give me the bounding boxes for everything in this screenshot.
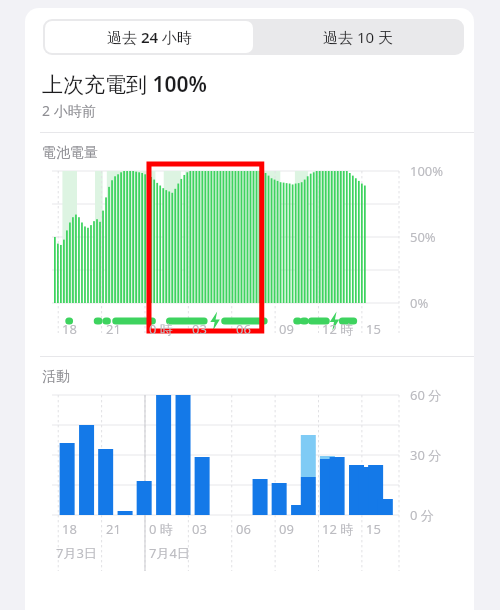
- staticText: 2 小時前: [42, 101, 96, 120]
- staticText: 0 時: [149, 520, 173, 538]
- staticText: 18: [62, 520, 77, 538]
- staticText: 09: [279, 520, 294, 538]
- staticText: 電池電量: [42, 144, 98, 162]
- staticText: 21: [106, 520, 121, 538]
- staticText: 過去 10 天: [323, 27, 393, 47]
- staticText: 09: [279, 320, 294, 338]
- staticText: 7月4日: [149, 544, 190, 562]
- staticText: 06: [236, 320, 251, 338]
- staticText: 03: [192, 320, 207, 338]
- staticText: 100%: [410, 162, 444, 180]
- staticText: 活動: [42, 368, 70, 386]
- staticText: 上次充電到 100%: [42, 70, 207, 99]
- staticText: 60 分: [410, 386, 442, 404]
- button[interactable]: 過去 10 天: [253, 21, 462, 53]
- staticText: 50%: [410, 228, 436, 246]
- staticText: 15: [366, 320, 381, 338]
- staticText: 15: [366, 520, 381, 538]
- staticText: 過去 24 小時: [107, 27, 192, 47]
- staticText: 03: [192, 520, 207, 538]
- staticText: 12 時: [322, 520, 354, 538]
- staticText: 12 時: [322, 320, 354, 338]
- staticText: 30 分: [410, 446, 442, 464]
- button[interactable]: 過去 24 小時: [45, 21, 253, 53]
- staticText: 06: [236, 520, 251, 538]
- staticText: 7月3日: [56, 544, 97, 562]
- staticText: 0 時: [149, 320, 173, 338]
- staticText: 21: [106, 320, 121, 338]
- staticText: 0 分: [410, 506, 434, 524]
- staticText: 0%: [410, 294, 429, 312]
- staticText: 18: [62, 320, 77, 338]
